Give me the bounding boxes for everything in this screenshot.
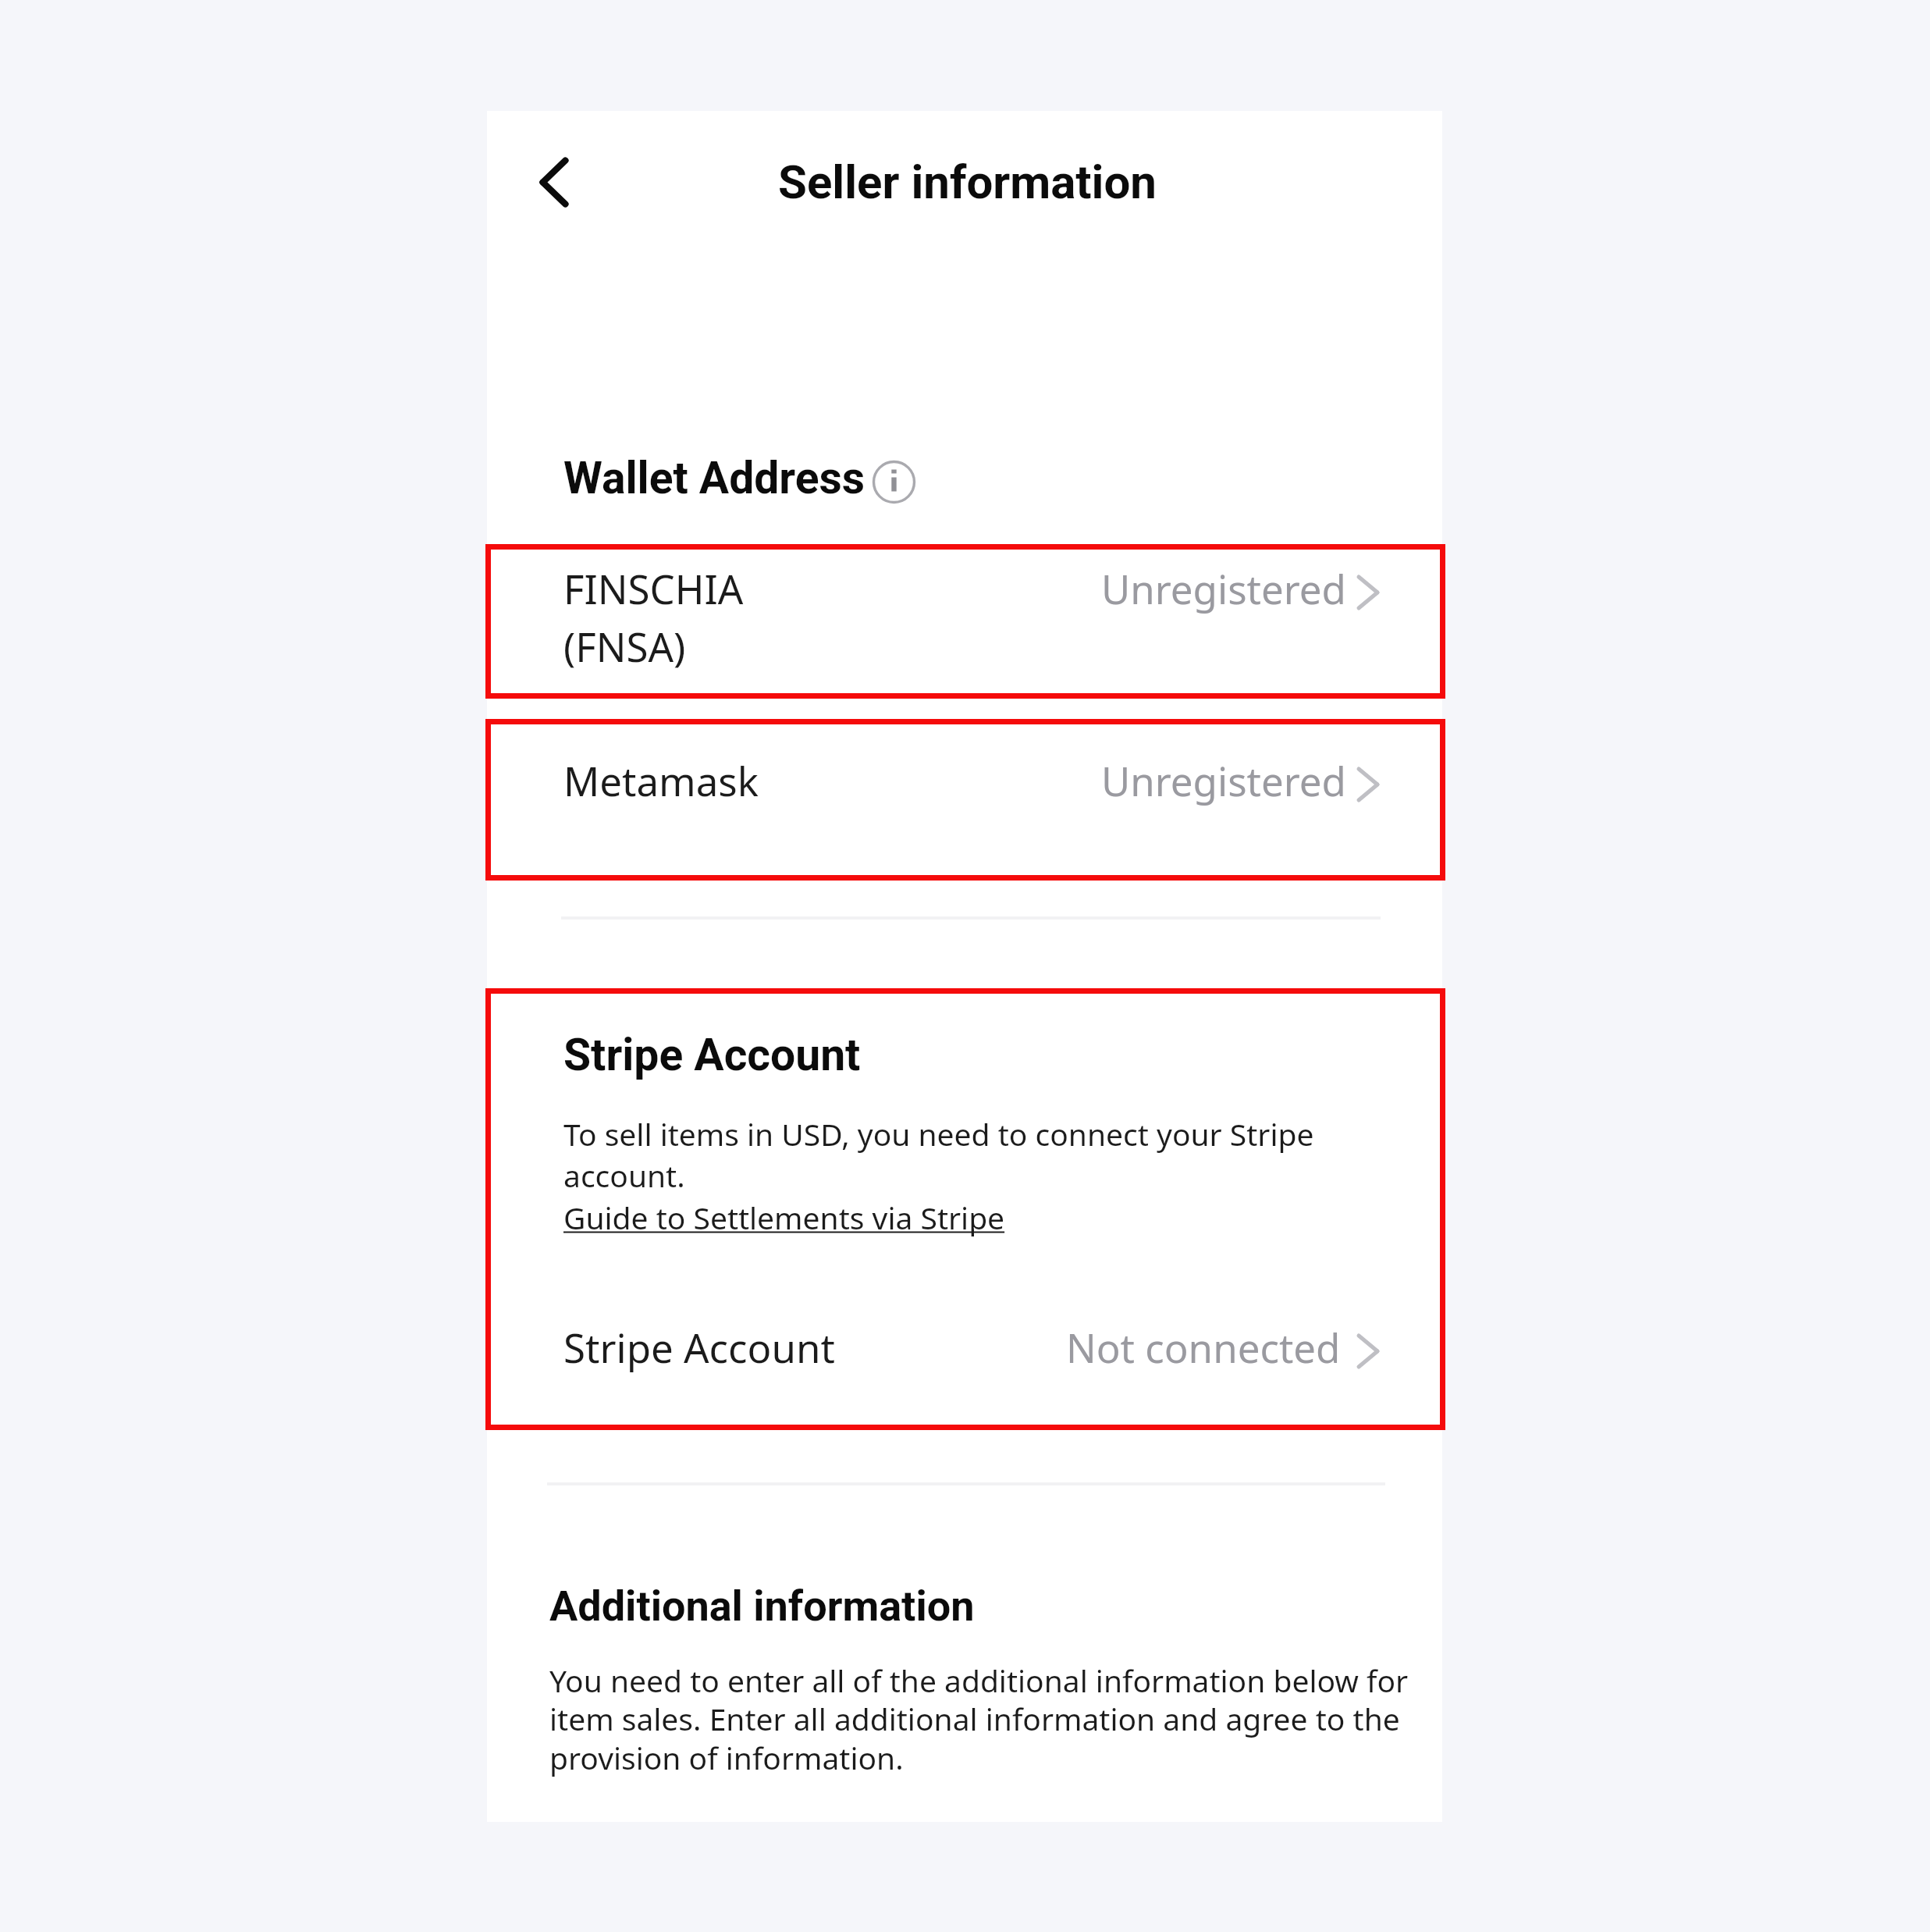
- button[interactable]: About wallet addresses: [871, 459, 917, 505]
- staticText: To sell items in USD, you need to connec…: [563, 1113, 1344, 1196]
- staticText: Seller information: [778, 155, 1157, 209]
- staticText: (FNSA): [563, 619, 686, 673]
- button[interactable]: [563, 1201, 1005, 1244]
- staticText: Wallet Address: [563, 452, 865, 504]
- staticText: Unregistered: [1101, 561, 1346, 615]
- button[interactable]: [487, 720, 1442, 880]
- staticText: Not connected: [1066, 1320, 1341, 1374]
- staticText: Additional information: [549, 1582, 975, 1631]
- button[interactable]: [487, 1296, 1442, 1429]
- staticText: You need to enter all of the additional …: [549, 1660, 1431, 1779]
- staticText: Stripe Account: [563, 1320, 835, 1374]
- button[interactable]: [487, 546, 1442, 698]
- staticText: Unregistered: [1101, 753, 1346, 807]
- staticText: Metamask: [563, 753, 759, 807]
- staticText: FINSCHIA: [563, 561, 744, 615]
- button[interactable]: Back: [499, 137, 593, 229]
- staticText: Stripe Account: [563, 1029, 861, 1081]
- staticText: Guide to Settlements via Stripe: [563, 1197, 1005, 1238]
